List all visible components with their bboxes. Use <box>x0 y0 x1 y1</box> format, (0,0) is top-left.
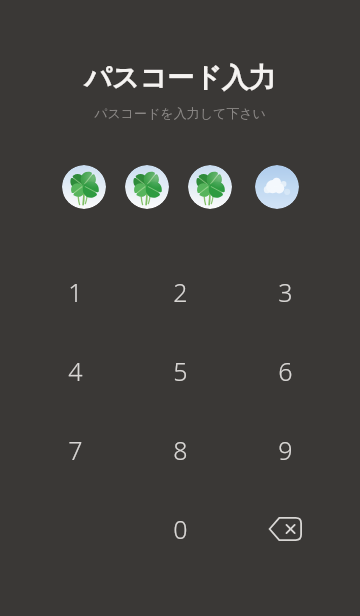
button[interactable]: 2 <box>132 261 228 323</box>
staticText: パスコードを入力して下さい <box>94 105 266 121</box>
staticText: パスコード入力 <box>84 61 276 95</box>
button[interactable]: 1 <box>27 261 123 323</box>
staticText: 0 <box>173 512 188 546</box>
staticText: 7 <box>68 433 83 467</box>
staticText: 1 <box>68 275 83 309</box>
button[interactable]: 6 <box>237 340 333 402</box>
staticText: 3 <box>278 275 293 309</box>
button[interactable]: 0 <box>132 498 228 560</box>
staticText: 4 <box>68 354 83 388</box>
staticText: 9 <box>278 433 293 467</box>
button[interactable]: 8 <box>132 419 228 481</box>
button[interactable]: 5 <box>132 340 228 402</box>
staticText: 8 <box>173 433 188 467</box>
staticText: 5 <box>173 354 188 388</box>
button[interactable]: Delete <box>237 498 333 560</box>
button[interactable]: 7 <box>27 419 123 481</box>
button[interactable]: 9 <box>237 419 333 481</box>
staticText: 2 <box>173 275 188 309</box>
staticText: 6 <box>278 354 293 388</box>
button[interactable]: 4 <box>27 340 123 402</box>
button[interactable]: 3 <box>237 261 333 323</box>
